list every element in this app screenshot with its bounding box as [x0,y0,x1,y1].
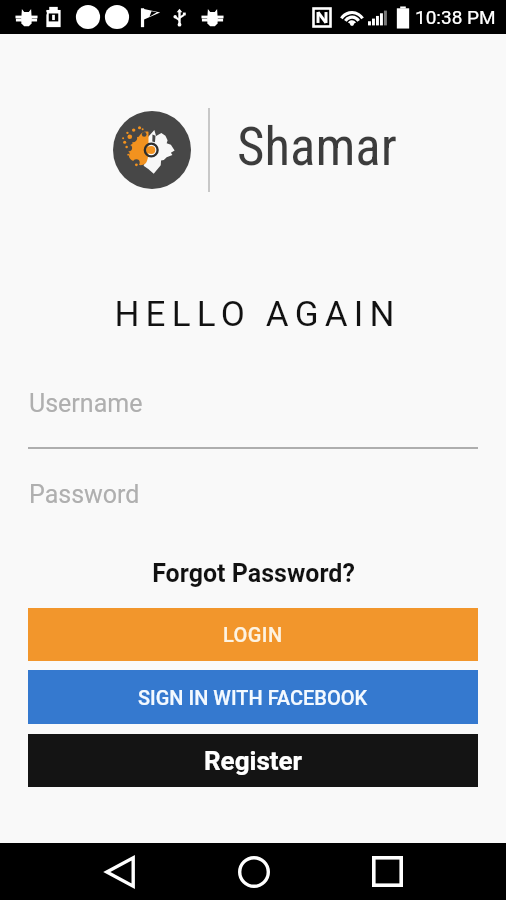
staticText: Username [29,389,143,417]
staticText: Forgot Password? [152,559,355,588]
button[interactable]: Recent apps [355,843,419,900]
button[interactable]: Register [28,734,478,787]
staticText: SIGN IN WITH FACEBOOK [138,686,368,709]
staticText: 10:38 PM [415,6,496,28]
staticText: Password [29,480,140,508]
button[interactable]: LOGIN [28,608,478,661]
button[interactable]: Password [28,471,478,539]
button[interactable]: Forgot Password? [0,556,506,590]
button[interactable]: Home [222,843,286,900]
button[interactable]: Back [88,843,152,900]
staticText: Shamar [237,116,397,178]
button[interactable]: Username [28,380,478,448]
staticText: HELLO AGAIN [114,294,401,335]
staticText: LOGIN [223,623,283,646]
staticText: Register [204,746,303,776]
button[interactable]: SIGN IN WITH FACEBOOK [28,670,478,724]
